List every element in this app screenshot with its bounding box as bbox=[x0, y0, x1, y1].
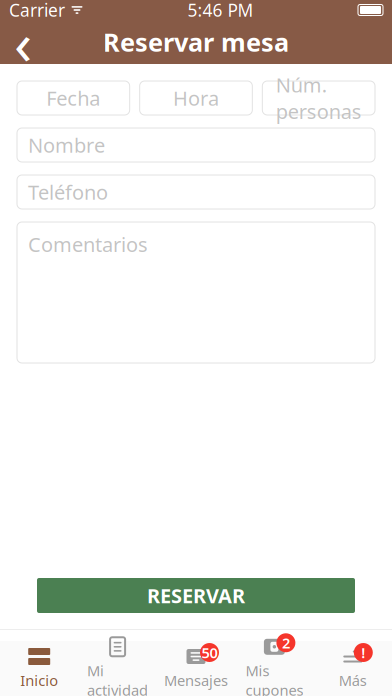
staticText: Reservar mesa bbox=[103, 25, 289, 59]
button[interactable]: RESERVAR bbox=[17, 578, 375, 613]
button[interactable]: Mi actividad bbox=[78, 636, 157, 696]
staticText: Carrier bbox=[9, 0, 65, 21]
staticText: Mi actividad bbox=[87, 661, 148, 696]
staticText: 50 bbox=[201, 643, 217, 662]
button[interactable]: ! bbox=[314, 645, 392, 690]
button[interactable]: 50 bbox=[157, 645, 235, 690]
staticText: Más bbox=[339, 670, 367, 690]
staticText: 2 bbox=[282, 633, 290, 652]
button[interactable]: Back bbox=[0, 20, 46, 64]
staticText: Comentarios bbox=[28, 231, 148, 258]
staticText: Mis cupones bbox=[245, 661, 303, 696]
staticText: RESERVAR bbox=[147, 582, 245, 609]
staticText: Inicio bbox=[20, 670, 58, 690]
staticText: 5:46 PM bbox=[187, 0, 253, 21]
staticText: ! bbox=[361, 643, 365, 662]
staticText: Mensajes bbox=[164, 670, 228, 690]
staticText: Nombre bbox=[28, 132, 105, 158]
staticText: ‹ bbox=[14, 3, 32, 81]
staticText: Teléfono bbox=[28, 179, 108, 205]
staticText: Fecha bbox=[46, 85, 100, 111]
staticText: Hora bbox=[173, 85, 219, 111]
button[interactable]: 2 bbox=[235, 636, 314, 696]
staticText: Núm. personas bbox=[276, 71, 362, 124]
button[interactable]: Inicio bbox=[0, 645, 78, 690]
